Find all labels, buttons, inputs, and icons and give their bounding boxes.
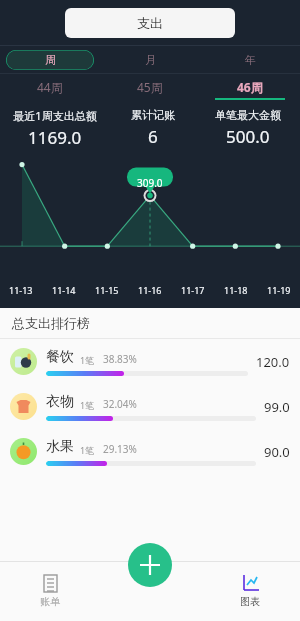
button[interactable]: 水果 [0,429,300,474]
button[interactable]: 衣物 [0,384,300,429]
button[interactable]: 年 [200,46,300,73]
staticText: 总支出排行榜 [12,315,90,331]
staticText: 衣物 [46,393,74,411]
staticText: 309.0 [137,176,163,190]
staticText: 99.0 [264,398,290,416]
staticText: 45周 [137,79,163,95]
staticText: 11-14 [52,284,76,296]
staticText: 图表 [240,595,260,608]
staticText: 29.13% [103,442,137,456]
staticText: 11-19 [267,284,291,296]
button[interactable]: 月 [100,46,200,73]
staticText: 年 [245,53,256,67]
staticText: 水果 [46,438,74,456]
staticText: 11-16 [138,284,162,296]
staticText: 44周 [37,79,63,95]
staticText: 32.04% [103,397,137,411]
staticText: 500.0 [226,125,270,148]
staticText: 1笔 [80,444,95,456]
staticText: 11-13 [9,284,33,296]
button[interactable]: 图表 [200,561,300,621]
staticText: 38.83% [103,352,137,366]
staticText: 120.0 [256,353,290,371]
staticText: 周 [45,53,56,67]
button[interactable]: 45周 [100,74,200,100]
staticText: 90.0 [264,443,290,461]
staticText: 账单 [40,595,60,608]
button[interactable]: 餐饮 [0,339,300,384]
staticText: 餐饮 [46,348,74,366]
staticText: 月 [145,53,156,67]
staticText: 最近1周支出总额 [13,108,97,123]
staticText: 11-15 [95,284,119,296]
button[interactable]: Add [128,543,172,587]
staticText: 单笔最大金额 [215,108,281,122]
staticText: 支出 [137,15,163,31]
button[interactable]: 46周 [200,74,300,100]
staticText: 1笔 [80,354,95,366]
staticText: 6 [148,125,158,148]
staticText: 11-18 [224,284,248,296]
staticText: 1笔 [80,399,95,411]
staticText: 46周 [237,79,263,95]
button[interactable]: 44周 [0,74,100,100]
staticText: 累计记账 [131,108,175,122]
button[interactable]: 周 [0,46,100,73]
staticText: 11-17 [181,284,205,296]
button[interactable]: 支出 [65,8,235,38]
staticText: 1169.0 [28,126,82,149]
button[interactable]: 账单 [0,561,100,621]
